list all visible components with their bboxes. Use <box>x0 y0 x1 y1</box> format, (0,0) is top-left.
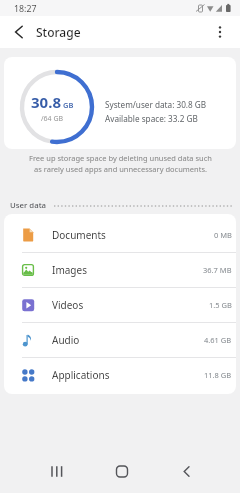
button[interactable]: Applications <box>4 358 236 392</box>
staticText: Audio <box>52 333 80 347</box>
button[interactable] <box>208 20 232 44</box>
staticText: Images <box>52 263 87 277</box>
staticText: Storage <box>36 24 81 40</box>
staticText: 36.7 MB <box>203 265 232 275</box>
staticText: 0 MB <box>214 230 232 240</box>
button[interactable] <box>172 457 202 487</box>
button[interactable] <box>42 457 72 487</box>
staticText: Free up storage space by deleting unused… <box>29 153 212 174</box>
staticText: 4.61 GB <box>204 335 232 345</box>
staticText: System/user data: 30.8 GB <box>105 99 207 110</box>
button[interactable]: Audio <box>4 323 236 357</box>
button[interactable] <box>105 457 135 487</box>
button[interactable]: Documents <box>4 218 236 252</box>
staticText: 11.8 GB <box>204 370 232 380</box>
staticText: 1.5 GB <box>209 300 232 310</box>
staticText: GB <box>61 100 74 110</box>
staticText: Available space: 33.2 GB <box>105 113 198 124</box>
staticText: 18:27 <box>14 3 37 15</box>
button[interactable] <box>4 18 32 46</box>
button[interactable]: Videos <box>4 288 236 322</box>
staticText: User data <box>10 200 47 211</box>
staticText: 30.8 <box>31 92 61 112</box>
staticText: Videos <box>52 298 84 312</box>
staticText: Documents <box>52 228 106 242</box>
staticText: Applications <box>52 368 110 382</box>
button[interactable]: Images <box>4 253 236 287</box>
staticText: /64 GB <box>41 114 64 124</box>
